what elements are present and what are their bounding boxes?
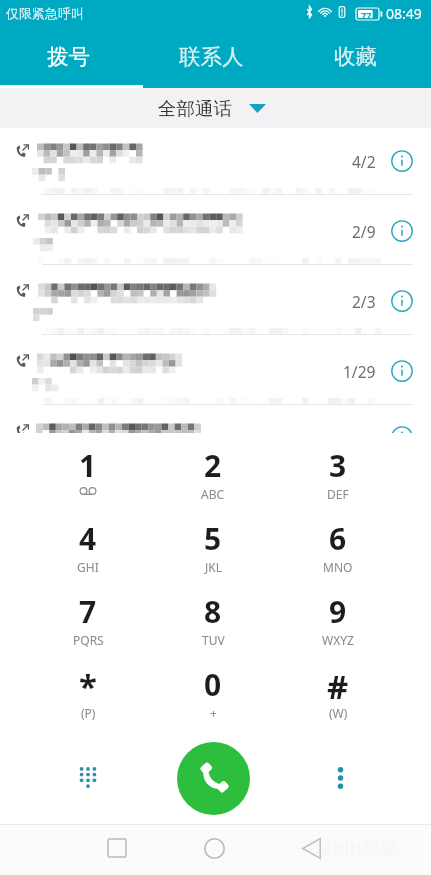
staticText: GHI [77, 559, 99, 575]
staticText: 4 [79, 518, 97, 556]
staticText: 7 [79, 591, 97, 629]
staticText: Baidu经验 [308, 835, 401, 861]
staticText: 77 [361, 9, 372, 21]
button[interactable]: 3 [276, 445, 400, 517]
staticText: 5 [204, 518, 222, 556]
staticText: TUV [202, 632, 225, 648]
button[interactable]: 全部通话 [158, 91, 274, 125]
staticText: ABC [201, 486, 225, 502]
button[interactable]: 8 [151, 591, 275, 663]
staticText: MNO [323, 559, 353, 575]
staticText: + [210, 705, 217, 721]
staticText: 全部通话 [158, 97, 232, 120]
button[interactable]: Call [177, 742, 250, 815]
button[interactable]: 7 [26, 591, 150, 663]
button[interactable]: 2 [151, 445, 275, 517]
button[interactable]: 收藏 [286, 28, 431, 85]
staticText: # [327, 664, 349, 702]
button[interactable]: 联系人 [143, 28, 286, 85]
button[interactable]: 0 [151, 664, 275, 736]
button[interactable]: Call details [385, 424, 419, 449]
staticText: 6 [329, 518, 347, 556]
staticText: 仅限紧急呼叫 [6, 5, 84, 21]
button[interactable]: 9 [276, 591, 400, 663]
staticText: 9 [329, 591, 347, 629]
staticText: (P) [81, 705, 96, 721]
staticText: 联系人 [179, 43, 244, 70]
staticText: 拨号 [47, 43, 90, 70]
staticText: 8 [204, 591, 222, 629]
button[interactable]: 2/3 [0, 268, 431, 338]
staticText: 3 [329, 445, 347, 483]
staticText: JKL [205, 559, 222, 575]
button[interactable]: 拨号 [0, 28, 143, 85]
button[interactable]: 4/2 [0, 128, 431, 198]
staticText: DEF [327, 486, 349, 502]
staticText: 1 [79, 445, 97, 483]
button[interactable]: # [276, 664, 400, 736]
button[interactable]: 6 [276, 518, 400, 590]
button[interactable]: 1/29 [0, 338, 431, 408]
button[interactable]: * [26, 664, 150, 736]
button[interactable]: Home [190, 824, 238, 872]
button[interactable]: 5 [151, 518, 275, 590]
button[interactable]: Call details [385, 354, 419, 388]
button[interactable]: Call details [385, 144, 419, 178]
staticText: PQRS [73, 632, 104, 648]
button[interactable]: Call details [385, 214, 419, 248]
staticText: 2 [204, 445, 222, 483]
staticText: 2/3 [352, 291, 376, 312]
staticText: (W) [329, 705, 348, 721]
button[interactable]: 1 [26, 445, 150, 517]
button[interactable]: Recents [93, 824, 141, 872]
staticText: 08:49 [386, 4, 422, 23]
button[interactable]: Call details [385, 284, 419, 318]
button[interactable]: Back [287, 824, 335, 872]
button[interactable]: Call details [0, 408, 431, 433]
button[interactable]: 2/9 [0, 198, 431, 268]
button[interactable]: More options [316, 754, 364, 802]
button[interactable]: Dialpad [64, 754, 112, 802]
staticText: 4/2 [352, 151, 376, 172]
staticText: * [79, 664, 97, 702]
button[interactable]: 4 [26, 518, 150, 590]
staticText: WXYZ [322, 632, 354, 648]
staticText: 收藏 [334, 43, 377, 70]
staticText: 1/29 [343, 361, 376, 382]
staticText: 2/9 [352, 221, 376, 242]
staticText: 0 [204, 664, 222, 702]
